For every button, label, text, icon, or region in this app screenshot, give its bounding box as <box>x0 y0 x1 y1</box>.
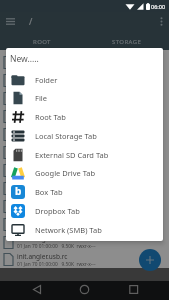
button[interactable]: default.prop <box>0 125 169 143</box>
staticText: b <box>15 185 22 198</box>
button[interactable]: Local Storage Tab <box>6 126 163 145</box>
button[interactable]: acct <box>0 53 169 71</box>
staticText: 01 Jan 70 01:00:00 9.50K rwxr-x--- <box>17 243 96 250</box>
staticText: init.angler.rc <box>17 216 55 225</box>
staticText: 01 Jan 70 01:00:00 9.50K rwxr-x--- <box>17 153 96 160</box>
button[interactable]: Folder <box>6 70 163 89</box>
staticText: / <box>29 15 33 27</box>
button[interactable]: data <box>0 107 169 125</box>
button[interactable]: File <box>6 88 163 107</box>
button[interactable]: init.angler.usb.rc <box>0 251 169 268</box>
staticText: 01 Jan 70 01:00:00 9.50K rwxr-x--- <box>17 225 96 232</box>
staticText: cache <box>17 72 35 81</box>
staticText: 01 Jan 70 01:00:00 9.50K rwxr-x--- <box>17 99 96 106</box>
button[interactable]: dev <box>0 143 169 161</box>
staticText: Box Tab <box>35 187 63 197</box>
staticText: New..... <box>10 53 39 65</box>
button[interactable]: init <box>0 197 169 215</box>
staticText: 01 Jan 70 01:00:00 9.50K rwxr-x--- <box>17 135 96 142</box>
button[interactable]: ROOT <box>0 34 84 50</box>
staticText: 01 Jan 70 01:00:00 9.50K rwxr-x--- <box>17 81 96 88</box>
staticText: 01 Jan 70 01:00:00 9.50K rwxr-x--- <box>17 261 96 268</box>
staticText: 01 Jan 70 01:00:00 9.50K rwxr-x--- <box>17 189 96 196</box>
staticText: STORAGE <box>112 38 142 46</box>
staticText: Dropbox Tab <box>35 206 80 216</box>
staticText: default.prop <box>17 126 55 135</box>
staticText: 06:00 <box>151 3 166 10</box>
staticText: init.angler.usb.rc <box>17 252 68 261</box>
staticText: firmware <box>17 180 45 189</box>
staticText: Root Tab <box>35 112 66 122</box>
button[interactable]: Root Tab <box>6 107 163 126</box>
button[interactable] <box>139 249 161 271</box>
staticText: 01 Jan 70 01:00:00 9.50K rwxr-x--- <box>17 117 96 124</box>
button[interactable]: Google Drive Tab <box>6 163 163 182</box>
button[interactable]: External SD Card Tab <box>6 145 163 164</box>
button[interactable]: b <box>6 182 163 201</box>
staticText: Network (SMB) Tab <box>35 225 102 235</box>
staticText: Local Storage Tab <box>35 131 97 141</box>
staticText: init <box>17 198 27 207</box>
button[interactable]: STORAGE <box>84 34 169 50</box>
staticText: External SD Card Tab <box>35 150 109 160</box>
staticText: Folder <box>35 75 58 85</box>
staticText: config <box>17 90 36 99</box>
button[interactable] <box>3 14 17 28</box>
button[interactable]: fstab.angler <box>0 233 169 251</box>
button[interactable]: Network (SMB) Tab <box>6 220 163 239</box>
staticText: etc <box>17 162 27 171</box>
button[interactable]: Dropbox Tab <box>6 201 163 220</box>
staticText: File <box>35 93 47 103</box>
staticText: Google Drive Tab <box>35 168 96 178</box>
button[interactable]: etc <box>0 161 169 179</box>
button[interactable]: firmware <box>0 179 169 197</box>
button[interactable]: config <box>0 89 169 107</box>
staticText: dev <box>17 144 28 153</box>
button[interactable]: init.angler.rc <box>0 215 169 233</box>
staticText: 01 Jan 70 01:00:00 9.50K rwxr-x--- <box>17 171 96 178</box>
button[interactable]: cache <box>0 71 169 89</box>
button[interactable] <box>155 15 167 27</box>
staticText: data <box>17 108 31 117</box>
staticText: 01 Jan 70 01:00:00 9.50K rwxr-x--- <box>17 207 96 214</box>
staticText: ROOT <box>33 38 51 46</box>
staticText: fstab.angler <box>17 234 54 243</box>
staticText: acct <box>17 54 30 63</box>
